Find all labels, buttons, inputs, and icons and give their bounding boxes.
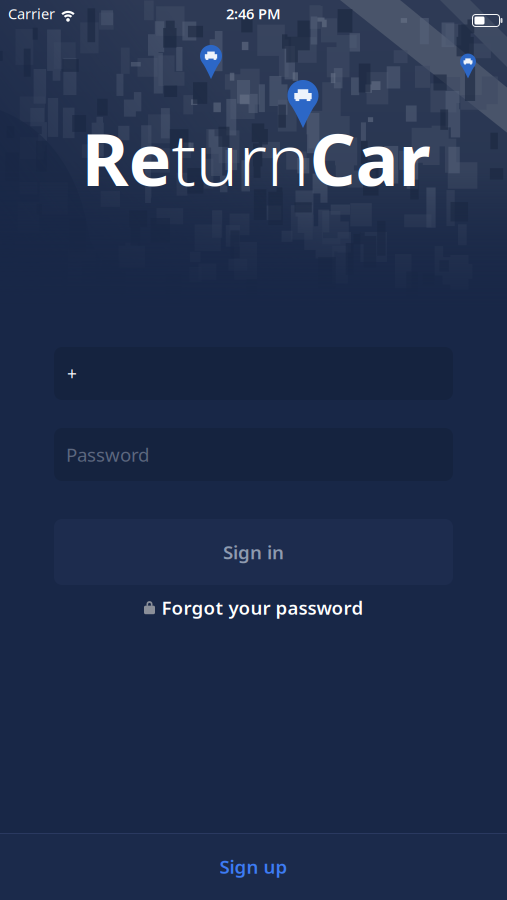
button[interactable]: Phone number: [54, 347, 453, 400]
staticText: Sign in: [223, 540, 284, 564]
staticText: turn: [171, 110, 309, 206]
staticText: Re: [81, 110, 171, 206]
staticText: +: [67, 362, 77, 385]
button[interactable]: Sign up: [0, 833, 507, 900]
button[interactable]: Password: [54, 428, 453, 481]
staticText: Car: [309, 110, 430, 206]
staticText: Sign up: [219, 854, 287, 879]
button[interactable]: Sign in: [54, 519, 453, 585]
button[interactable]: Forgot your password: [143, 589, 363, 626]
staticText: 2:46 PM: [226, 4, 281, 23]
staticText: Carrier: [8, 4, 55, 23]
staticText: Password: [66, 442, 149, 467]
staticText: Forgot your password: [161, 595, 363, 620]
